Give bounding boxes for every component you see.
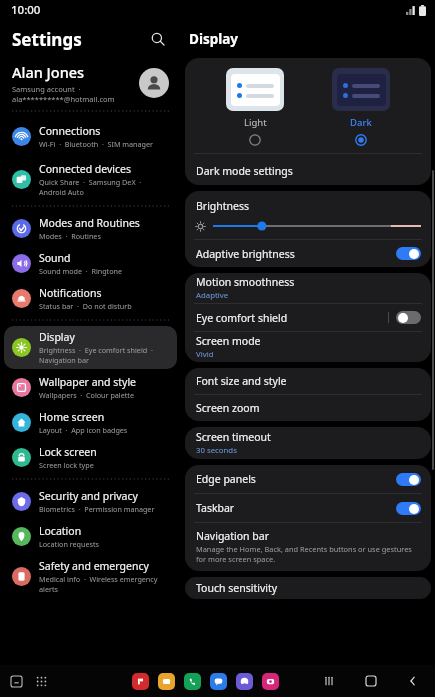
button[interactable]: Connections (4, 116, 177, 156)
staticText: Screen lock type (39, 460, 94, 470)
staticText: Adaptive brightness (196, 247, 396, 261)
button[interactable]: Display (4, 326, 177, 369)
button[interactable]: Modes and Routines (4, 212, 177, 245)
staticText: Display (189, 30, 239, 48)
staticText: Screen mode (196, 334, 261, 348)
button[interactable]: Lock screen (4, 441, 177, 474)
button[interactable]: Screen mode (185, 332, 431, 362)
staticText: Screen timeout (196, 430, 271, 444)
staticText: Navigation bar (196, 529, 270, 543)
button[interactable]: Taskbar (185, 494, 431, 522)
staticText: Biometrics · Permission manager (39, 504, 155, 514)
button[interactable]: Edge panels (185, 465, 431, 493)
staticText: Location requests (39, 539, 99, 549)
staticText: Wallpaper and style (39, 375, 137, 389)
staticText: Connections (39, 124, 101, 138)
button[interactable]: Safety and emergency (4, 555, 177, 598)
button[interactable]: Eye comfort shield (185, 304, 431, 331)
button[interactable]: ph (184, 673, 201, 690)
staticText: Sound mode · Ringtone (39, 266, 123, 276)
staticText: Safety and emergency (39, 559, 149, 573)
button[interactable]: Font size and style (185, 368, 431, 394)
button[interactable]: Screen zoom (185, 395, 431, 421)
button[interactable]: Adaptive brightness (185, 240, 431, 267)
staticText: Brightness · Eye comfort shield · Naviga… (39, 345, 171, 365)
button[interactable]: Home screen (4, 406, 177, 439)
staticText: Quick Share · Samsung DeX · Android Auto (39, 177, 171, 197)
staticText: Light (244, 116, 267, 129)
button[interactable] (213, 219, 421, 233)
button[interactable]: net (236, 673, 253, 690)
button[interactable]: f (132, 673, 149, 690)
button[interactable]: Home (361, 671, 381, 691)
staticText: Manage the Home, Back, and Recents butto… (196, 544, 420, 564)
staticText: Taskbar (196, 501, 396, 515)
staticText: Dark (350, 116, 372, 129)
staticText: Medical info · Wireless emergency alerts (39, 574, 171, 594)
staticText: ala**********@hotmail.com (12, 94, 115, 104)
staticText: Brightness (196, 199, 250, 213)
button[interactable]: Dark (326, 68, 396, 146)
button[interactable]: cam (262, 673, 279, 690)
staticText: Touch sensitivity (196, 581, 278, 595)
staticText: Adaptive (196, 290, 229, 301)
button[interactable]: Light (220, 68, 290, 146)
staticText: Security and privacy (39, 489, 138, 503)
staticText: Layout · App icon badges (39, 425, 128, 435)
button[interactable]: Search (145, 26, 171, 52)
staticText: Notifications (39, 286, 102, 300)
button[interactable]: Apps (31, 671, 51, 691)
staticText: Screen zoom (196, 401, 260, 415)
staticText: Modes and Routines (39, 216, 140, 230)
button[interactable]: Motion smoothness (185, 273, 431, 303)
staticText: Connected devices (39, 162, 132, 176)
staticText: Vivid (196, 349, 214, 360)
button[interactable]: Touch sensitivity (185, 577, 431, 599)
staticText: Dark mode settings (196, 164, 293, 178)
staticText: Samsung account · (12, 84, 81, 94)
staticText: Wi-Fi · Bluetooth · SIM manager (39, 139, 154, 149)
staticText: Home screen (39, 410, 105, 424)
staticText: Edge panels (196, 472, 396, 486)
button[interactable]: Eye comfort (396, 311, 421, 324)
staticText: Lock screen (39, 445, 97, 459)
button[interactable]: Wallpaper and style (4, 371, 177, 404)
staticText: 10:00 (11, 2, 41, 18)
staticText: 30 seconds (196, 445, 237, 456)
button[interactable]: Sound (4, 247, 177, 280)
staticText: Eye comfort shield (196, 311, 388, 325)
staticText: Wallpapers · Colour palette (39, 390, 134, 400)
button[interactable]: Security and privacy (4, 485, 177, 518)
button[interactable]: Notifications (4, 282, 177, 315)
button[interactable]: Screen timeout (185, 427, 431, 459)
staticText: Settings (12, 28, 82, 51)
button[interactable]: Connected devices (4, 158, 177, 201)
staticText: Font size and style (196, 374, 287, 388)
button[interactable]: Edge panels (396, 473, 421, 486)
staticText: Status bar · Do not disturb (39, 301, 132, 311)
button[interactable]: Recent apps (319, 671, 339, 691)
button[interactable]: Back (403, 671, 423, 691)
button[interactable]: fold (158, 673, 175, 690)
staticText: Sound (39, 251, 71, 265)
button[interactable]: Recents (6, 671, 26, 691)
staticText: Alan Jones (12, 62, 85, 82)
button[interactable]: Alan Jones (0, 58, 181, 108)
button[interactable]: Location (4, 520, 177, 553)
staticText: Motion smoothness (196, 275, 295, 289)
button[interactable]: Dark mode settings (185, 157, 431, 185)
button[interactable]: Navigation bar (185, 523, 431, 571)
button[interactable]: Taskbar (396, 502, 421, 515)
staticText: Location (39, 524, 82, 538)
button[interactable]: msg (210, 673, 227, 690)
staticText: Display (39, 330, 75, 344)
button[interactable]: Brightness toggle (396, 247, 421, 260)
staticText: Modes · Routines (39, 231, 101, 241)
